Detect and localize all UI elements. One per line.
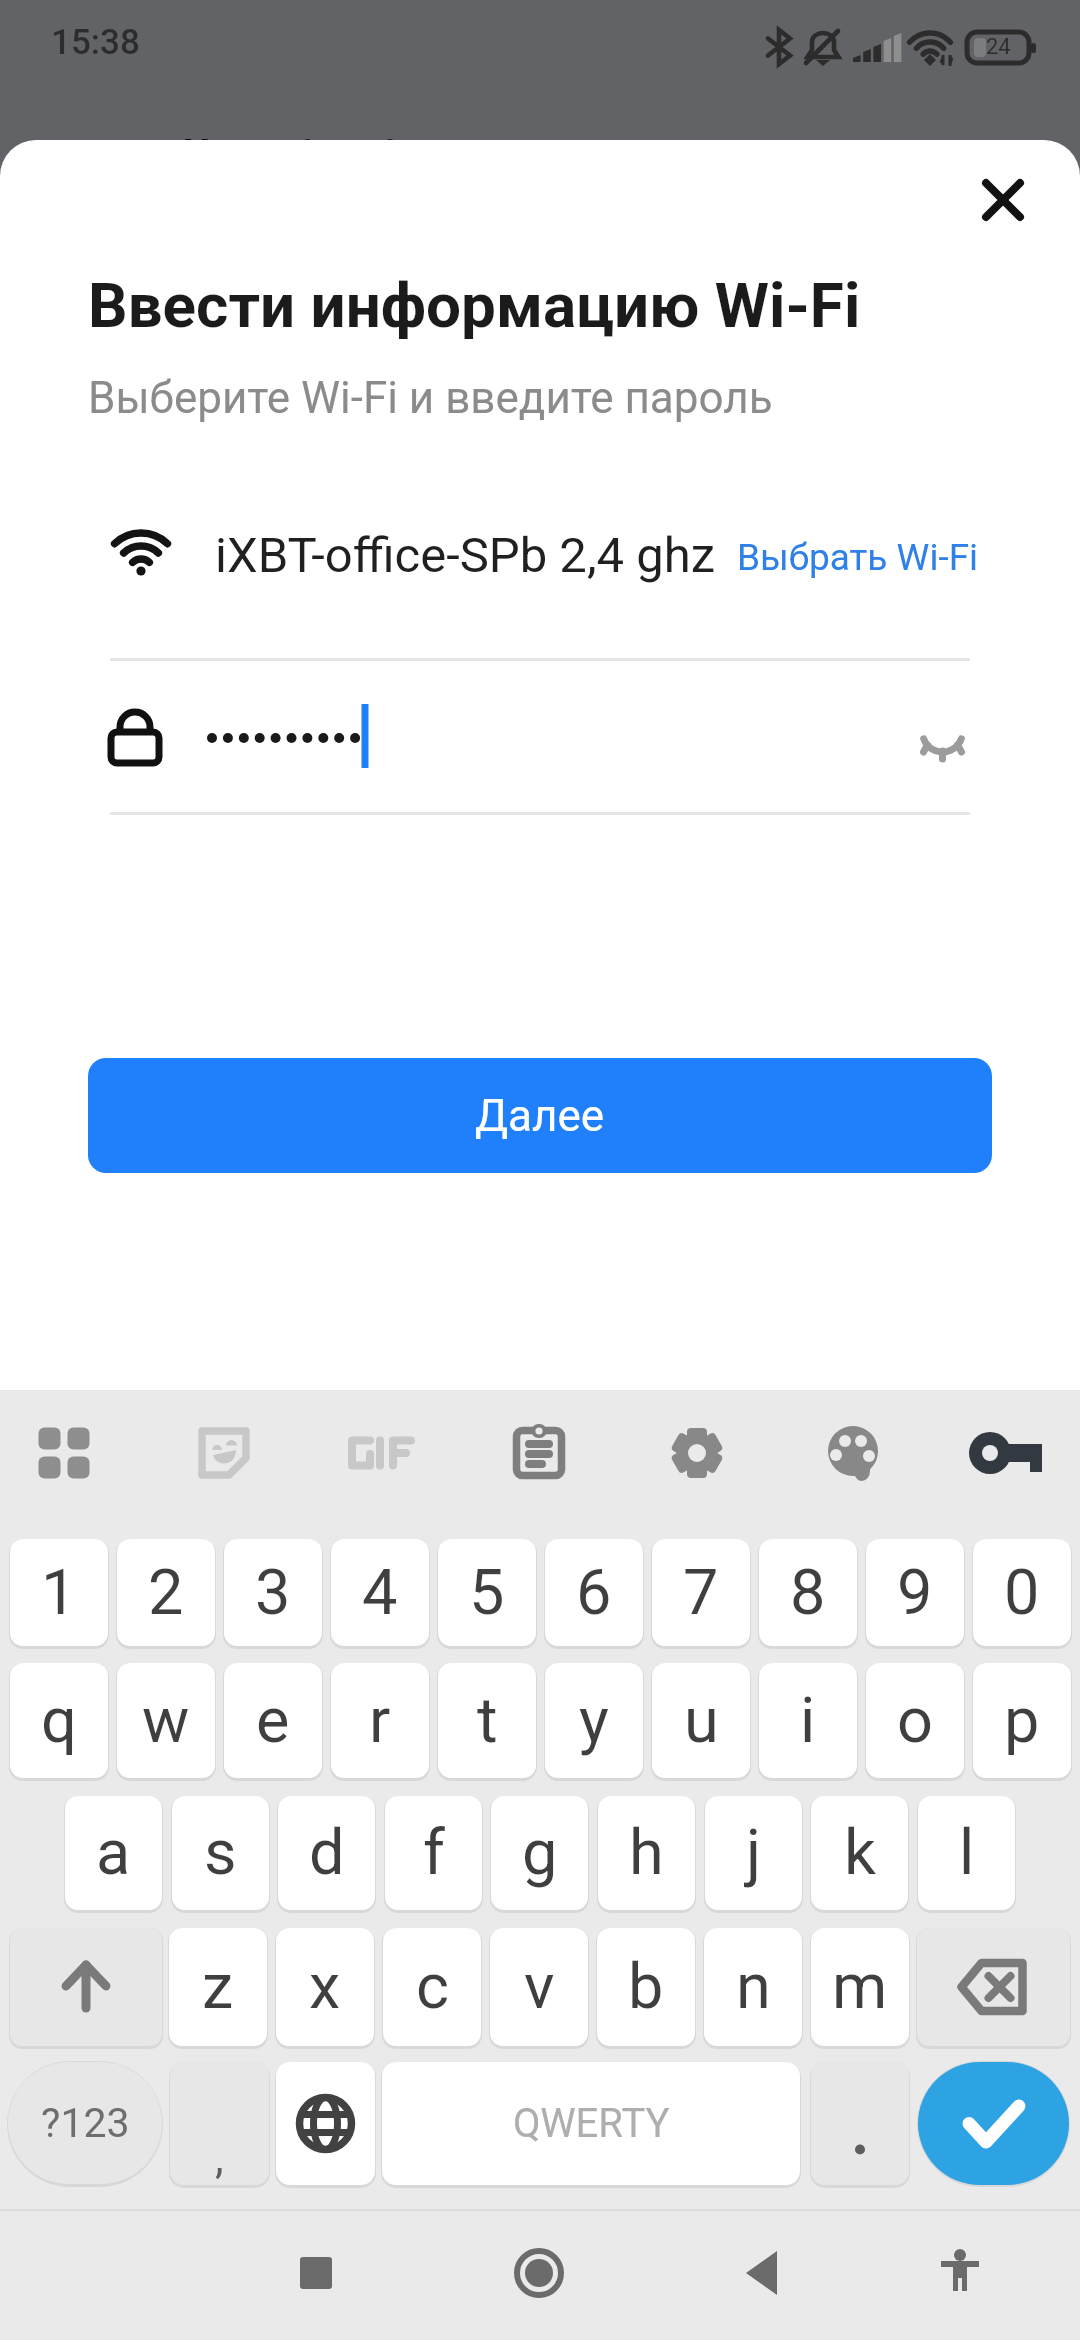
button[interactable]: QWERTY — [382, 2062, 800, 2185]
staticText: 7 — [683, 1556, 719, 1630]
button[interactable]: Change language — [276, 2062, 375, 2185]
button[interactable]: Accessibility — [910, 2223, 1010, 2323]
staticText: c — [416, 1950, 449, 2024]
button[interactable]: y — [545, 1663, 643, 1778]
button[interactable]: Stickers — [180, 1409, 268, 1497]
button[interactable]: c — [383, 1928, 481, 2046]
button[interactable]: 2 — [117, 1539, 215, 1646]
staticText: QWERTY — [513, 2100, 670, 2147]
button[interactable]: 8 — [759, 1539, 857, 1646]
button[interactable]: k — [811, 1796, 908, 1910]
button[interactable]: Back — [712, 2223, 812, 2323]
staticText: e — [256, 1684, 290, 1758]
button[interactable]: q — [10, 1663, 108, 1778]
staticText: u — [684, 1684, 719, 1758]
staticText: iXBT-office-SPb 2,4 ghz — [215, 527, 716, 584]
button[interactable]: Password — [963, 1409, 1051, 1497]
staticText: , — [215, 2132, 224, 2184]
staticText: g — [522, 1816, 558, 1890]
button[interactable]: j — [705, 1796, 802, 1910]
button[interactable]: 7 — [652, 1539, 750, 1646]
button[interactable]: u — [652, 1663, 750, 1778]
button[interactable]: n — [704, 1928, 802, 2046]
staticText: 3 — [255, 1556, 291, 1630]
button[interactable]: w — [117, 1663, 215, 1778]
button[interactable]: Home — [489, 2223, 589, 2323]
staticText: r — [369, 1684, 391, 1758]
staticText: Выбрать Wi-Fi — [737, 536, 979, 579]
button[interactable]: 9 — [866, 1539, 964, 1646]
button[interactable]: GIF — [337, 1409, 425, 1497]
button[interactable]: . — [811, 2062, 909, 2185]
staticText: k — [844, 1816, 876, 1890]
button[interactable]: s — [172, 1796, 269, 1910]
staticText: p — [1004, 1684, 1040, 1758]
button[interactable]: t — [438, 1663, 536, 1778]
button[interactable]: Shift — [10, 1928, 162, 2046]
staticText: ?123 — [41, 2099, 130, 2147]
button[interactable]: v — [490, 1928, 588, 2046]
staticText: 4 — [362, 1556, 398, 1630]
staticText: 5 — [469, 1556, 505, 1630]
staticText: a — [96, 1816, 131, 1890]
button[interactable]: Apps — [20, 1409, 108, 1497]
button[interactable]: Settings — [653, 1409, 741, 1497]
button[interactable]: o — [866, 1663, 964, 1778]
staticText: 24 — [986, 34, 1011, 60]
staticText: h — [629, 1816, 664, 1890]
staticText: z — [202, 1950, 234, 2024]
button[interactable]: Theme — [809, 1409, 897, 1497]
button[interactable]: a — [65, 1796, 162, 1910]
staticText: 8 — [790, 1556, 826, 1630]
button[interactable]: iXBT-office-SPb 2,4 ghz — [0, 500, 1080, 620]
staticText: 1 — [41, 1556, 77, 1630]
staticText: x — [309, 1950, 341, 2024]
button[interactable]: Enter — [918, 2062, 1069, 2185]
button[interactable]: Clipboard — [495, 1409, 583, 1497]
button[interactable]: p — [973, 1663, 1071, 1778]
staticText: Мой Wi-Fi — [72, 125, 400, 209]
button[interactable]: x — [276, 1928, 374, 2046]
button[interactable]: , — [170, 2062, 269, 2185]
button[interactable]: r — [331, 1663, 429, 1778]
staticText: 2 — [148, 1556, 184, 1630]
staticText: y — [579, 1684, 609, 1758]
staticText: Ввести информацию Wi-Fi — [88, 269, 861, 342]
button[interactable]: 6 — [545, 1539, 643, 1646]
staticText: m — [832, 1950, 888, 2024]
staticText: j — [746, 1816, 762, 1890]
staticText: q — [41, 1684, 77, 1758]
button[interactable]: Recents — [266, 2223, 366, 2323]
button[interactable]: 4 — [331, 1539, 429, 1646]
button[interactable]: 0 — [973, 1539, 1071, 1646]
button[interactable]: g — [491, 1796, 588, 1910]
staticText: l — [959, 1816, 975, 1890]
staticText: n — [736, 1950, 771, 2024]
button[interactable]: 5 — [438, 1539, 536, 1646]
staticText: w — [142, 1684, 190, 1758]
staticText: v — [524, 1950, 555, 2024]
button[interactable]: 3 — [224, 1539, 322, 1646]
button[interactable]: m — [811, 1928, 909, 2046]
button[interactable]: ?123 — [8, 2062, 162, 2184]
staticText: 9 — [897, 1556, 933, 1630]
button[interactable]: z — [169, 1928, 267, 2046]
staticText: o — [897, 1684, 933, 1758]
staticText: d — [309, 1816, 345, 1890]
staticText: 0 — [1004, 1556, 1040, 1630]
button[interactable]: 1 — [10, 1539, 108, 1646]
button[interactable]: d — [278, 1796, 375, 1910]
button[interactable]: Show password — [887, 690, 997, 800]
staticText: s — [204, 1816, 237, 1890]
button[interactable]: Backspace — [917, 1928, 1070, 2046]
button[interactable]: e — [224, 1663, 322, 1778]
button[interactable]: Далее — [88, 1058, 992, 1173]
button[interactable]: h — [598, 1796, 695, 1910]
button[interactable]: f — [385, 1796, 482, 1910]
button[interactable]: b — [597, 1928, 695, 2046]
button[interactable]: Close — [953, 150, 1053, 250]
button[interactable]: l — [918, 1796, 1015, 1910]
staticText: Далее — [475, 1090, 605, 1142]
button[interactable]: i — [759, 1663, 857, 1778]
staticText: t — [477, 1684, 498, 1758]
